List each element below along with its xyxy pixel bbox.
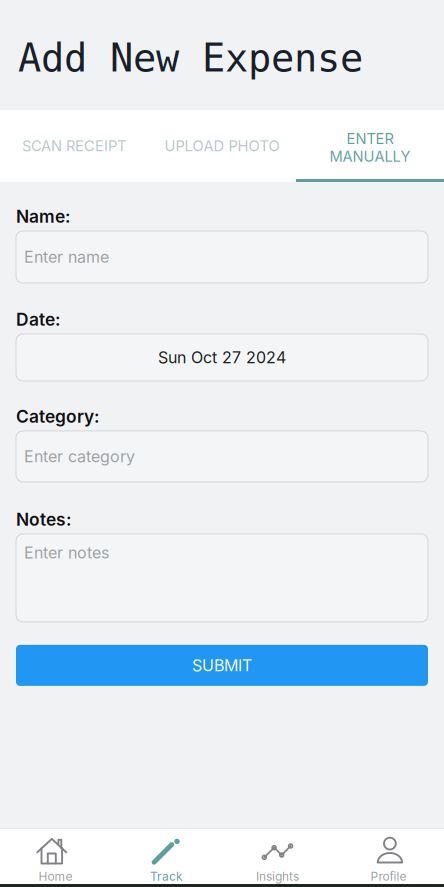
staticText: Name:	[16, 206, 71, 227]
staticText: Add New Expense	[18, 35, 363, 80]
staticText: Enter category	[24, 447, 135, 466]
button[interactable]: UPLOAD PHOTO	[148, 110, 296, 182]
staticText: ENTER	[346, 130, 393, 147]
staticText: Category:	[16, 406, 100, 427]
staticText: Enter name	[24, 247, 109, 267]
staticText: SUBMIT	[192, 656, 252, 675]
button[interactable]: Home	[0, 836, 111, 883]
button[interactable]: Enter category	[16, 431, 428, 482]
button[interactable]: SUBMIT	[16, 645, 428, 686]
button[interactable]: Track	[111, 836, 222, 883]
staticText: MANUALLY	[329, 147, 410, 165]
staticText: Track	[150, 869, 183, 883]
staticText: Profile	[370, 869, 406, 883]
staticText: Sun Oct 27 2024	[158, 348, 286, 367]
staticText: Enter notes	[24, 543, 109, 562]
staticText: SCAN RECEIPT	[22, 137, 126, 155]
button[interactable]: ENTER	[296, 110, 444, 182]
button[interactable]: Enter name	[16, 231, 428, 283]
button[interactable]: Enter notes	[16, 534, 428, 622]
button[interactable]: Profile	[333, 836, 444, 883]
button[interactable]: SCAN RECEIPT	[0, 110, 148, 182]
staticText: UPLOAD PHOTO	[164, 137, 279, 155]
button[interactable]: Sun Oct 27 2024	[16, 334, 428, 381]
staticText: Home	[38, 869, 72, 883]
staticText: Insights	[256, 869, 299, 883]
staticText: Notes:	[16, 509, 72, 530]
staticText: Date:	[16, 309, 61, 330]
button[interactable]: Insights	[222, 836, 333, 883]
